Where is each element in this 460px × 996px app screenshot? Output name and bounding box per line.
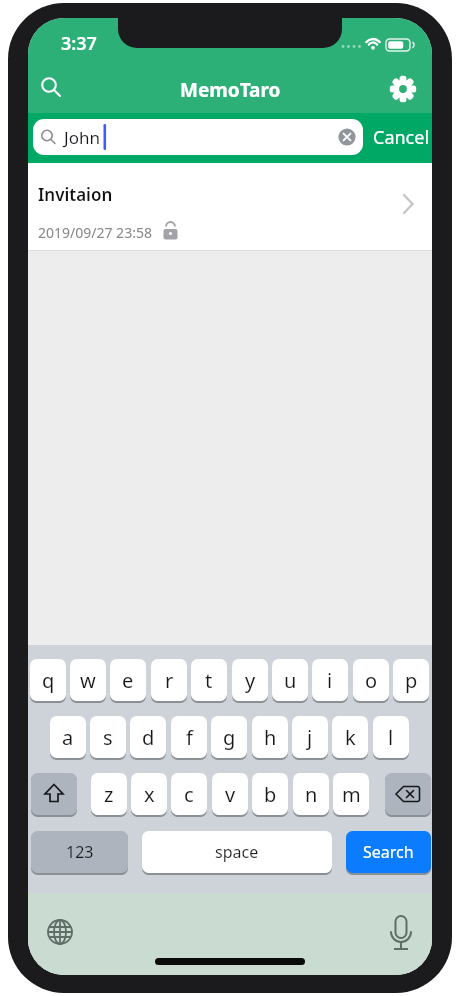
button[interactable]: n [293,773,329,815]
staticText: space [215,841,259,863]
button[interactable]: z [91,773,127,815]
button[interactable]: Cancel [371,119,432,155]
staticText: 2019/09/27 23:58 [38,223,152,242]
button[interactable]: John [33,119,363,155]
button[interactable]: Invitaion [28,163,432,251]
staticText: i [327,667,333,694]
staticText: u [284,667,297,694]
button[interactable]: b [252,773,288,815]
button[interactable]: q [30,659,66,701]
button[interactable]: v [212,773,248,815]
button[interactable]: t [191,659,227,701]
button[interactable]: space [142,831,332,873]
button[interactable]: y [232,659,268,701]
staticText: 3:37 [61,31,97,56]
button[interactable]: r [151,659,187,701]
button[interactable]: h [252,716,288,758]
staticText: o [365,667,378,694]
staticText: l [388,724,394,751]
button[interactable]: s [90,716,126,758]
staticText: g [223,724,236,751]
button[interactable]: d [130,716,166,758]
button[interactable]: o [353,659,389,701]
staticText: m [342,781,361,808]
button[interactable]: w [70,659,106,701]
button[interactable]: x [131,773,167,815]
staticText: f [186,724,193,751]
staticText: John [64,126,100,149]
button[interactable] [46,918,74,946]
button[interactable]: a [50,716,86,758]
button[interactable]: k [332,716,368,758]
staticText: y [245,667,256,694]
staticText: x [144,781,155,808]
button[interactable] [31,773,77,815]
staticText: z [104,781,114,808]
staticText: t [205,667,213,694]
staticText: a [62,724,74,751]
button[interactable]: g [211,716,247,758]
staticText: Cancel [373,125,430,150]
button[interactable]: l [373,716,409,758]
button[interactable]: e [110,659,146,701]
staticText: Invitaion [38,183,113,206]
staticText: k [345,724,356,751]
staticText: Search [363,841,414,863]
staticText: d [142,724,155,751]
staticText: n [305,781,318,808]
button[interactable]: c [171,773,207,815]
staticText: h [264,724,277,751]
staticText: j [307,724,313,751]
button[interactable]: m [333,773,369,815]
staticText: w [80,667,96,694]
button[interactable]: j [292,716,328,758]
button[interactable]: f [171,716,207,758]
button[interactable]: i [312,659,348,701]
button[interactable]: 123 [31,831,128,873]
button[interactable] [387,73,419,105]
staticText: e [122,667,134,694]
staticText: 123 [66,841,94,863]
button[interactable] [36,72,68,104]
staticText: s [103,724,113,751]
staticText: b [264,781,277,808]
staticText: c [184,781,194,808]
staticText: MemoTaro [180,77,281,103]
button[interactable] [385,773,431,815]
staticText: v [225,781,236,808]
staticText: r [165,667,174,694]
button[interactable]: u [272,659,308,701]
button[interactable]: Search [346,831,431,873]
button[interactable] [387,914,415,954]
staticText: p [405,667,418,694]
staticText: q [42,667,55,694]
button[interactable]: p [393,659,429,701]
